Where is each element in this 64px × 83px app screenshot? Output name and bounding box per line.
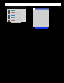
button[interactable]	[7, 15, 26, 18]
button[interactable]	[7, 12, 26, 15]
button[interactable]	[7, 17, 26, 20]
button[interactable]: Title bar	[33, 8, 49, 10]
button[interactable]	[7, 10, 26, 13]
button[interactable]	[7, 20, 26, 23]
